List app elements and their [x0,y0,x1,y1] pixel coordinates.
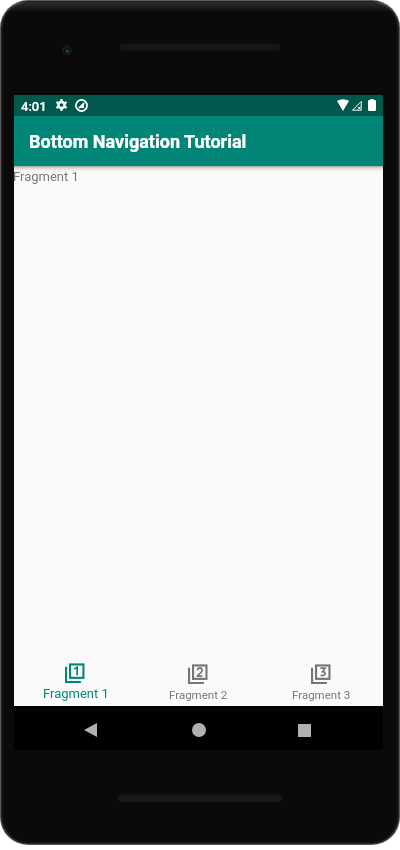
button[interactable]: Fragment 1 [14,655,137,706]
staticText: Fragment 2 [169,688,228,701]
button[interactable]: Home [171,706,226,750]
staticText: Fragment 1 [13,169,79,184]
button[interactable]: Fragment 2 [137,655,260,706]
staticText: Fragment 3 [292,688,351,701]
staticText: Fragment 1 [43,686,109,701]
staticText: Bottom Navigation Tutorial [29,131,247,152]
staticText: 4:01 [21,99,47,114]
button[interactable]: Back [63,706,118,750]
button[interactable]: Fragment 3 [260,655,383,706]
button[interactable]: Recent apps [277,706,332,750]
